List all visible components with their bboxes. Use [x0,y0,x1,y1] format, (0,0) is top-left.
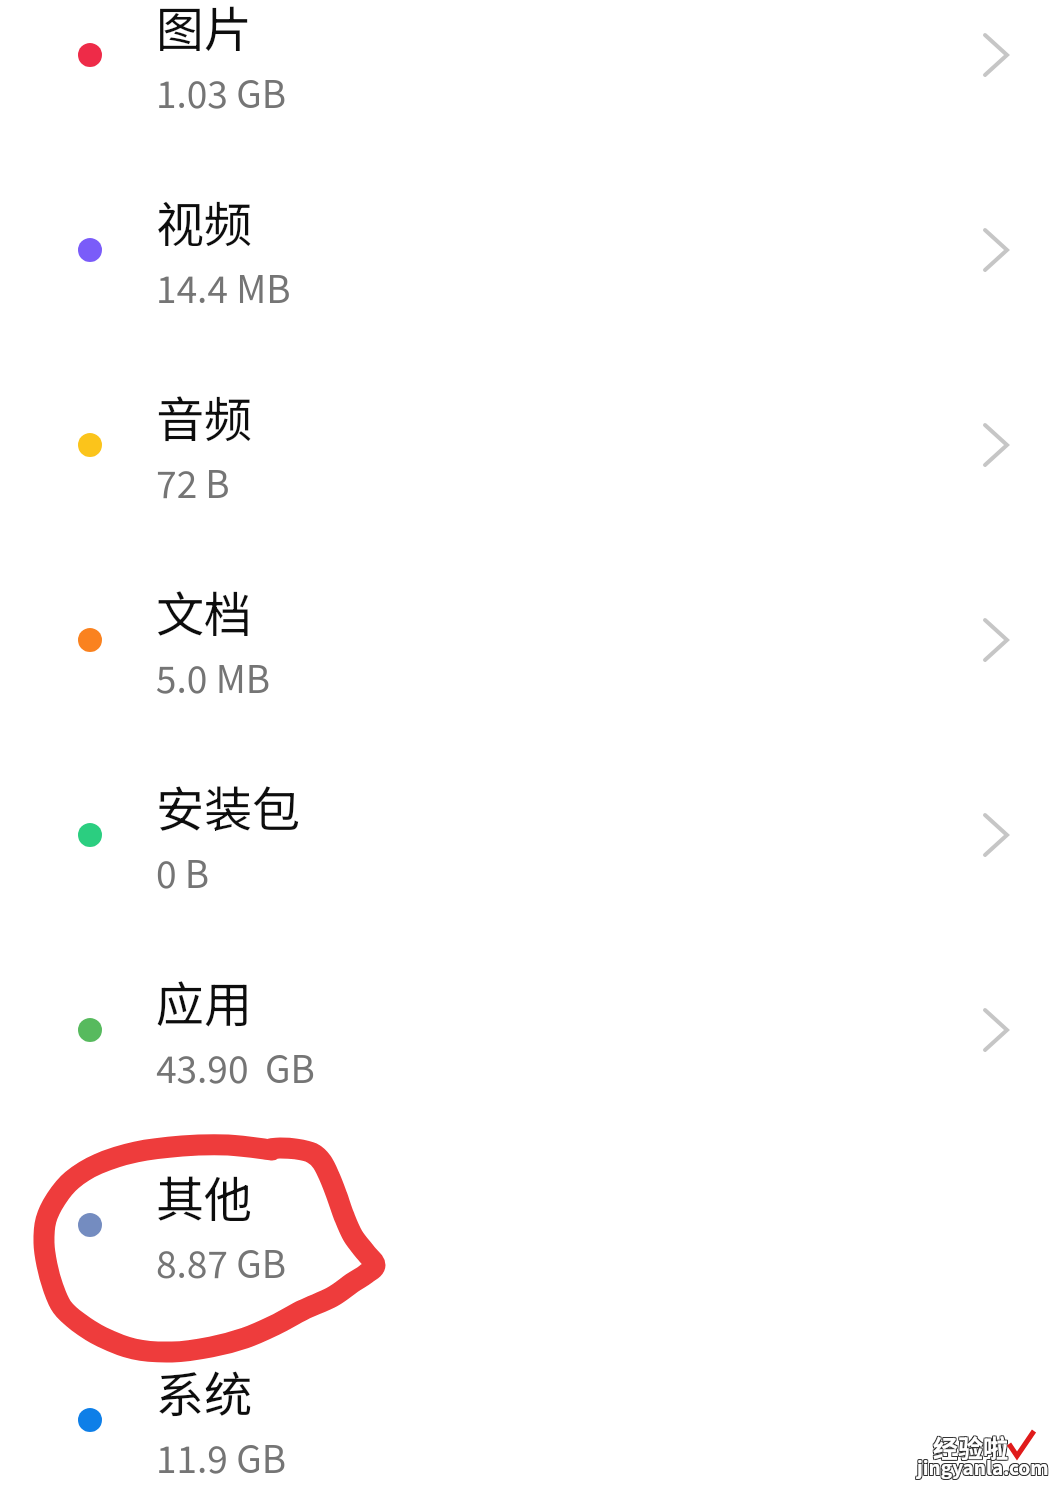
staticText: 安装包 [156,771,301,841]
button[interactable]: 文档 [0,542,1057,737]
staticText: jingyanla.com [916,1452,1048,1480]
staticText: jingyanla.com [917,1453,1049,1481]
staticText: jingyanla.com [918,1454,1050,1482]
staticText: jingyanla.com [917,1454,1049,1482]
button[interactable]: 系统 [0,1322,1057,1486]
staticText: 经验啦 [932,1429,1008,1465]
staticText: 14.4 MB [156,260,291,314]
staticText: 72 B [156,455,230,509]
staticText: jingyanla.com [916,1453,1048,1481]
staticText: 视频 [156,186,253,256]
staticText: jingyanla.com [916,1454,1048,1482]
staticText: 8.87 GB [156,1235,286,1289]
other: Open 应用 [966,1000,1026,1060]
staticText: 其他 [156,1161,253,1231]
other: Open 文档 [966,610,1026,670]
staticText: 5.0 MB [156,650,270,704]
staticText: 经验啦 [933,1430,1009,1466]
staticText: 经验啦 [934,1428,1010,1464]
staticText: jingyanla.com [917,1452,1049,1480]
staticText: 经验啦 [934,1429,1010,1465]
button[interactable]: 其他 [0,1127,1057,1322]
other: Open 安装包 [966,805,1026,865]
other: Open 图片 [966,25,1026,85]
staticText: 应用 [156,966,253,1036]
button[interactable]: 音频 [0,347,1057,542]
staticText: 0 B [156,845,210,899]
other: Open 音频 [966,415,1026,475]
staticText: 1.03 GB [156,65,286,119]
other: Open 视频 [966,220,1026,280]
staticText: 经验啦 [932,1430,1008,1466]
staticText: 43.90 GB [156,1040,315,1094]
staticText: 文档 [156,576,253,646]
button[interactable]: 视频 [0,152,1057,347]
staticText: 经验啦 [934,1430,1010,1466]
staticText: jingyanla.com [918,1452,1050,1480]
staticText: 音频 [156,381,253,451]
staticText: 系统 [156,1356,253,1426]
button[interactable]: 安装包 [0,737,1057,932]
button[interactable]: 应用 [0,932,1057,1127]
staticText: 经验啦 [933,1428,1009,1464]
staticText: 11.9 GB [156,1430,286,1484]
staticText: 经验啦 [932,1428,1008,1464]
button[interactable]: 图片 [0,0,1057,152]
staticText: 图片 [156,0,253,61]
staticText: 经验啦 [933,1429,1009,1465]
staticText: jingyanla.com [918,1453,1050,1481]
